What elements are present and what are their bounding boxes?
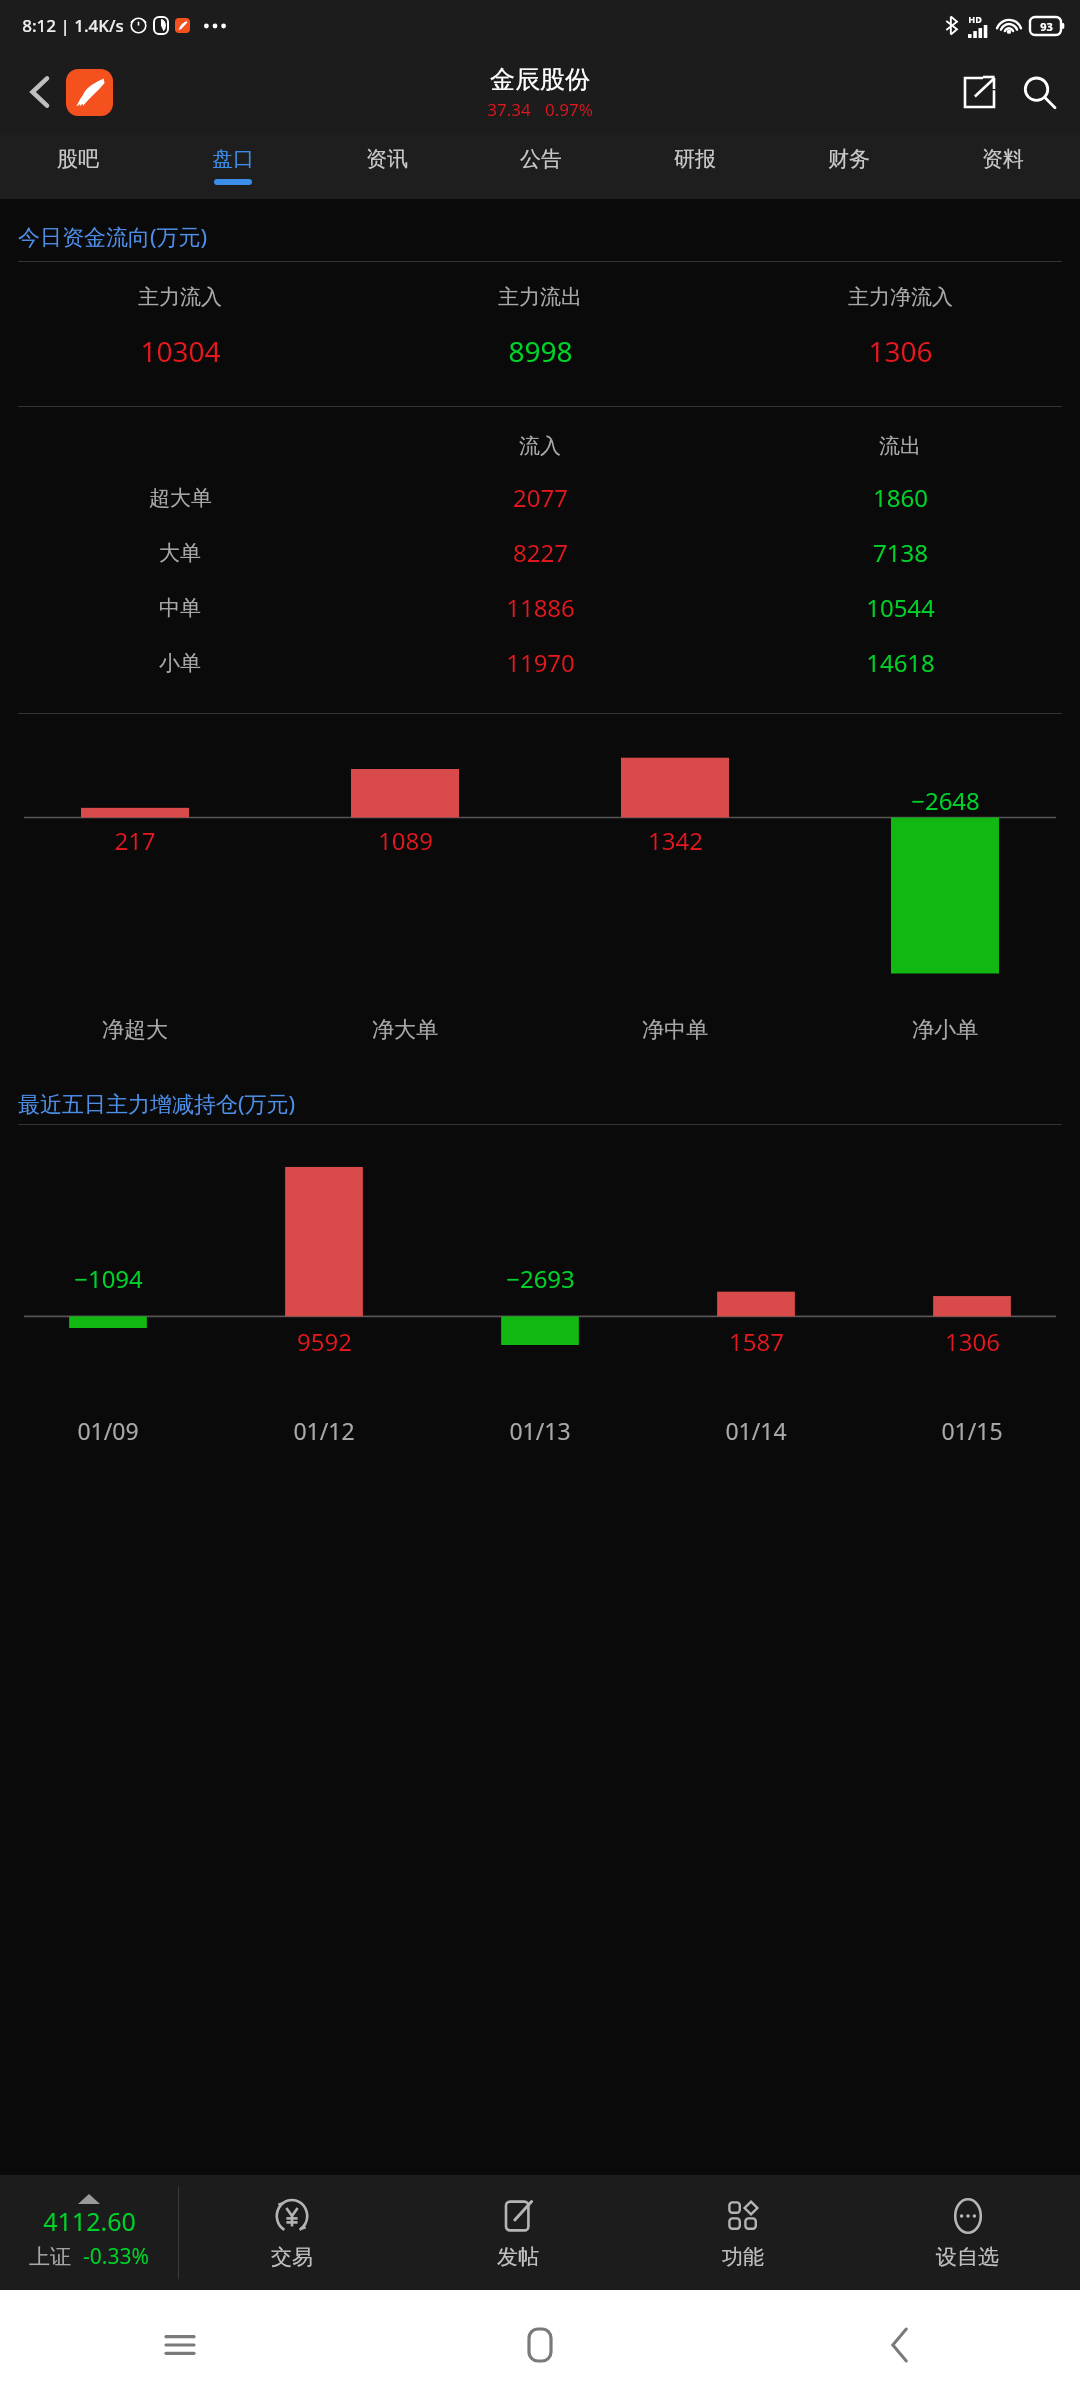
staticText: 盘口 bbox=[212, 146, 254, 172]
button[interactable]: 设自选 bbox=[855, 2175, 1080, 2290]
button[interactable]: 发帖 bbox=[405, 2175, 630, 2290]
button[interactable]: 财务 bbox=[772, 134, 926, 199]
staticText: 01/09 bbox=[77, 1415, 139, 1446]
button[interactable]: 功能 bbox=[630, 2175, 855, 2290]
staticText: 1089 bbox=[378, 824, 433, 857]
staticText: 14618 bbox=[866, 646, 935, 679]
button[interactable]: Share bbox=[950, 63, 1008, 121]
button[interactable]: 资料 bbox=[926, 134, 1080, 199]
button[interactable]: 股吧 bbox=[0, 134, 155, 199]
staticText: 小单 bbox=[159, 650, 201, 676]
staticText: 0.97% bbox=[545, 98, 593, 121]
staticText: 1306 bbox=[868, 332, 933, 370]
staticText: 2077 bbox=[513, 481, 568, 514]
staticText: 4112.60 bbox=[43, 2204, 136, 2238]
staticText: 01/14 bbox=[725, 1415, 787, 1446]
staticText: 发帖 bbox=[497, 2244, 539, 2270]
staticText: 01/12 bbox=[293, 1415, 355, 1446]
button[interactable]: 4112.60 bbox=[0, 2175, 178, 2290]
staticText: 10544 bbox=[866, 591, 935, 624]
staticText: 今日资金流向(万元) bbox=[18, 221, 208, 251]
button[interactable]: 盘口 bbox=[155, 134, 310, 199]
button[interactable]: Back bbox=[14, 66, 66, 118]
staticText: 净大单 bbox=[372, 1016, 438, 1044]
staticText: 11970 bbox=[506, 646, 575, 679]
staticText: −2693 bbox=[506, 1262, 575, 1295]
button[interactable]: 资讯 bbox=[310, 134, 464, 199]
staticText: 37.34 bbox=[487, 98, 531, 121]
staticText: 8:12 | 1.4K/s bbox=[22, 14, 124, 37]
staticText: 研报 bbox=[674, 146, 716, 172]
staticText: 公告 bbox=[520, 146, 562, 172]
staticText: -0.33% bbox=[83, 2242, 149, 2271]
staticText: 功能 bbox=[722, 2244, 764, 2270]
staticText: 流入 bbox=[519, 433, 561, 459]
button[interactable]: Search bbox=[1008, 61, 1070, 123]
staticText: 主力净流入 bbox=[848, 284, 953, 310]
staticText: 中单 bbox=[159, 595, 201, 621]
staticText: 资讯 bbox=[366, 146, 408, 172]
staticText: 主力流出 bbox=[498, 284, 582, 310]
button[interactable]: 研报 bbox=[618, 134, 772, 199]
staticText: 流出 bbox=[879, 433, 921, 459]
staticText: 10304 bbox=[140, 332, 221, 370]
staticText: 净超大 bbox=[102, 1016, 168, 1044]
staticText: 设自选 bbox=[936, 2244, 999, 2270]
staticText: 上证 bbox=[29, 2244, 71, 2270]
staticText: 股吧 bbox=[57, 146, 99, 172]
staticText: 最近五日主力增减持仓(万元) bbox=[18, 1088, 296, 1118]
staticText: HD bbox=[968, 13, 982, 25]
button[interactable]: 交易 bbox=[179, 2175, 405, 2290]
staticText: −1094 bbox=[74, 1262, 143, 1295]
button[interactable]: Recent apps bbox=[0, 2290, 360, 2400]
staticText: 金辰股份 bbox=[490, 64, 590, 95]
staticText: 8227 bbox=[513, 536, 568, 569]
staticText: 1342 bbox=[648, 824, 703, 857]
staticText: 01/13 bbox=[509, 1415, 571, 1446]
staticText: 资料 bbox=[982, 146, 1024, 172]
staticText: 1860 bbox=[873, 481, 928, 514]
staticText: 01/15 bbox=[941, 1415, 1003, 1446]
staticText: 11886 bbox=[506, 591, 575, 624]
staticText: 净小单 bbox=[912, 1016, 978, 1044]
staticText: 9592 bbox=[297, 1325, 352, 1358]
button[interactable]: App home bbox=[66, 69, 113, 116]
staticText: 1587 bbox=[729, 1325, 784, 1358]
button[interactable]: Home bbox=[360, 2290, 720, 2400]
staticText: −2648 bbox=[911, 784, 980, 817]
staticText: 217 bbox=[114, 824, 156, 857]
staticText: 93 bbox=[1040, 19, 1053, 34]
staticText: 财务 bbox=[828, 146, 870, 172]
staticText: 大单 bbox=[159, 540, 201, 566]
staticText: 主力流入 bbox=[138, 284, 222, 310]
staticText: 净中单 bbox=[642, 1016, 708, 1044]
staticText: 交易 bbox=[271, 2244, 313, 2270]
staticText: 超大单 bbox=[149, 485, 212, 511]
staticText: 8998 bbox=[508, 332, 573, 370]
button[interactable]: 公告 bbox=[464, 134, 618, 199]
staticText: 7138 bbox=[873, 536, 928, 569]
button[interactable]: Back bbox=[720, 2290, 1080, 2400]
staticText: 1306 bbox=[945, 1325, 1000, 1358]
